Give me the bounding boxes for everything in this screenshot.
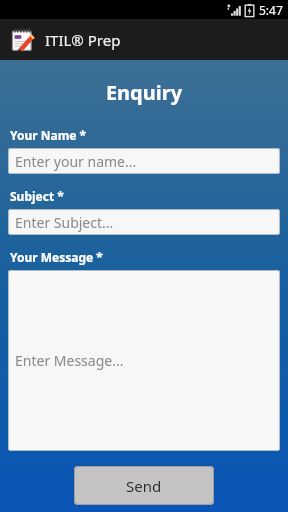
staticText: Subject *	[10, 188, 64, 204]
staticText: Enter Message...	[15, 351, 124, 370]
staticText: Enter your name...	[15, 152, 137, 171]
staticText: Your Name *	[10, 127, 87, 143]
staticText: ITIL® Prep	[45, 30, 121, 50]
button[interactable]: Send	[74, 466, 214, 505]
staticText: Enquiry	[0, 79, 288, 106]
staticText: Your Message *	[10, 249, 103, 265]
button[interactable]: Enter Message...	[8, 270, 280, 451]
other: App icon	[11, 28, 35, 52]
staticText: 5:47	[259, 2, 283, 18]
button[interactable]: Enter your name...	[8, 148, 280, 174]
staticText: Send	[126, 476, 162, 496]
staticText: Enter Subject...	[15, 213, 114, 232]
button[interactable]: Enter Subject...	[8, 209, 280, 235]
